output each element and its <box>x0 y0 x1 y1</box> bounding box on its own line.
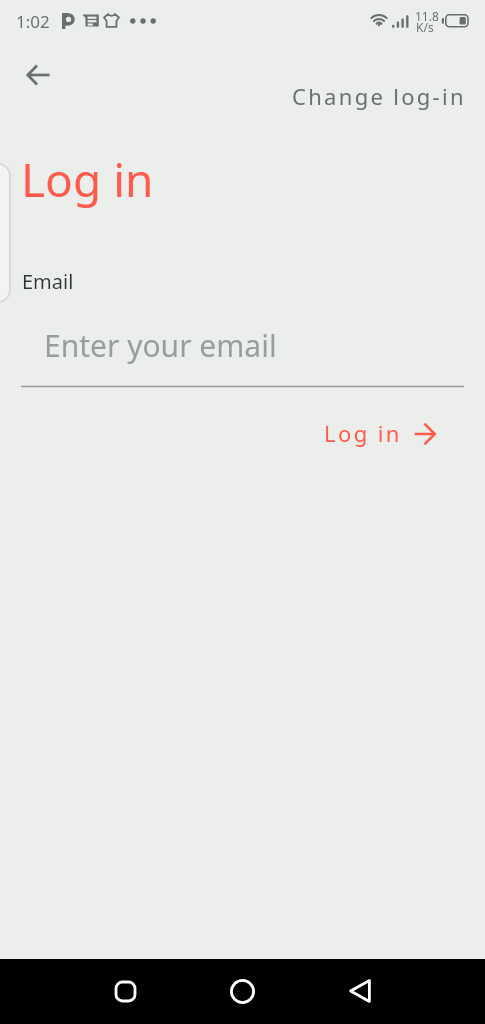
button[interactable]: Back <box>14 51 62 99</box>
button[interactable]: Back <box>336 967 384 1015</box>
staticText: Change log-in <box>292 81 466 111</box>
button[interactable]: Home <box>218 967 266 1015</box>
button[interactable]: Recent apps <box>101 967 149 1015</box>
staticText: Email <box>22 268 74 295</box>
staticText: 11.8 <box>415 8 439 24</box>
staticText: Log in <box>21 148 154 211</box>
button[interactable]: Change log-in <box>284 75 474 117</box>
staticText: K/s <box>416 19 434 35</box>
staticText: 1:02 <box>16 10 50 33</box>
button[interactable]: Log in <box>311 410 449 458</box>
staticText: Log in <box>324 418 402 448</box>
staticText: Enter your email <box>44 325 277 366</box>
